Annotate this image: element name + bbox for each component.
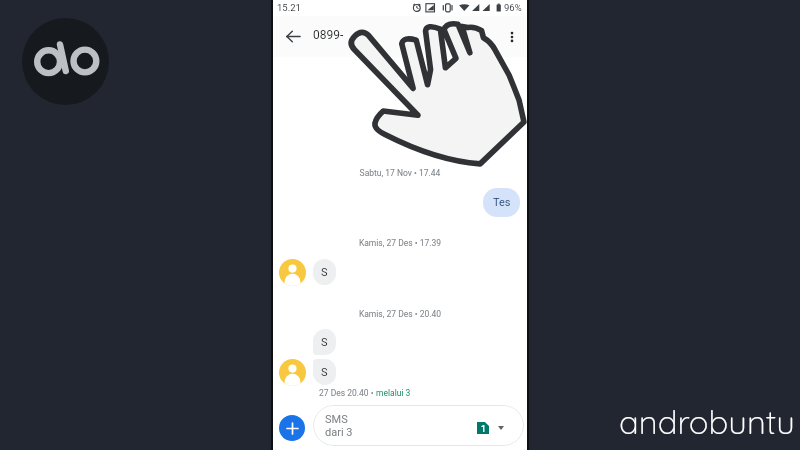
staticText: Kamis, 27 Des • 17.39 bbox=[273, 238, 527, 248]
staticText: S bbox=[321, 366, 328, 379]
staticText: Sabtu, 17 Nov • 17.44 bbox=[273, 168, 527, 178]
button[interactable]: More options bbox=[497, 22, 526, 51]
button[interactable]: Contact avatar bbox=[279, 259, 306, 286]
staticText: melalui 3 bbox=[376, 388, 411, 398]
staticText: Tes bbox=[493, 196, 511, 209]
staticText: 27 Des 20.40 • bbox=[319, 388, 376, 398]
staticText: 1 bbox=[481, 424, 486, 434]
button[interactable]: Add attachment bbox=[279, 415, 305, 441]
button[interactable]: Contact avatar bbox=[279, 359, 306, 386]
button[interactable]: SIM 1 bbox=[477, 422, 489, 434]
button[interactable]: Androbuntu logo bbox=[22, 18, 109, 105]
staticText: Kamis, 27 Des • 20.40 bbox=[273, 309, 527, 319]
button[interactable]: SMS bbox=[313, 405, 524, 446]
staticText: S bbox=[321, 336, 328, 349]
staticText: androbuntu bbox=[619, 401, 795, 442]
staticText: 15.21 bbox=[277, 2, 301, 13]
button[interactable]: Tes bbox=[483, 188, 520, 217]
staticText: 96% bbox=[504, 2, 522, 13]
button[interactable]: S bbox=[313, 259, 336, 285]
button[interactable]: S bbox=[313, 329, 336, 355]
staticText: S bbox=[321, 266, 328, 279]
staticText: dari 3 bbox=[325, 426, 353, 439]
staticText: 0899- bbox=[313, 28, 344, 42]
staticText: SMS bbox=[325, 413, 348, 426]
button[interactable]: Back bbox=[279, 22, 308, 51]
button[interactable]: S bbox=[313, 359, 336, 385]
